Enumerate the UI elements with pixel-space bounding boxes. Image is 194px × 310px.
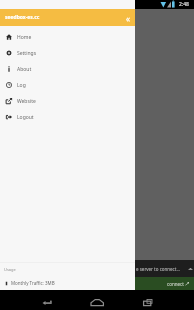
button[interactable]: Website bbox=[0, 93, 135, 109]
button[interactable]: e server to connect... bbox=[135, 260, 194, 277]
staticText: About bbox=[17, 66, 32, 73]
staticText: Monthly Traffic: 3MB bbox=[11, 280, 55, 286]
staticText: 2:48 bbox=[179, 1, 189, 8]
button[interactable]: Close drawer bbox=[121, 11, 135, 25]
button[interactable]: Monthly Traffic: 3MB bbox=[0, 276, 135, 290]
button[interactable]: Logout bbox=[0, 109, 135, 125]
button[interactable]: connect bbox=[135, 277, 194, 290]
button[interactable]: Log bbox=[0, 77, 135, 93]
staticText: e server to connect... bbox=[136, 266, 181, 272]
staticText: seedbox-es.cc bbox=[5, 14, 40, 21]
button[interactable]: Settings bbox=[0, 45, 135, 61]
button[interactable]: Home bbox=[0, 29, 135, 45]
staticText: Settings bbox=[17, 50, 37, 57]
staticText: Logout bbox=[17, 114, 34, 121]
button[interactable]: About bbox=[0, 61, 135, 77]
staticText: Website bbox=[17, 98, 36, 105]
staticText: Usage bbox=[4, 267, 16, 272]
staticText: Home bbox=[17, 34, 32, 41]
staticText: connect bbox=[167, 281, 184, 287]
staticText: « bbox=[126, 13, 131, 24]
staticText: Log bbox=[17, 82, 26, 89]
